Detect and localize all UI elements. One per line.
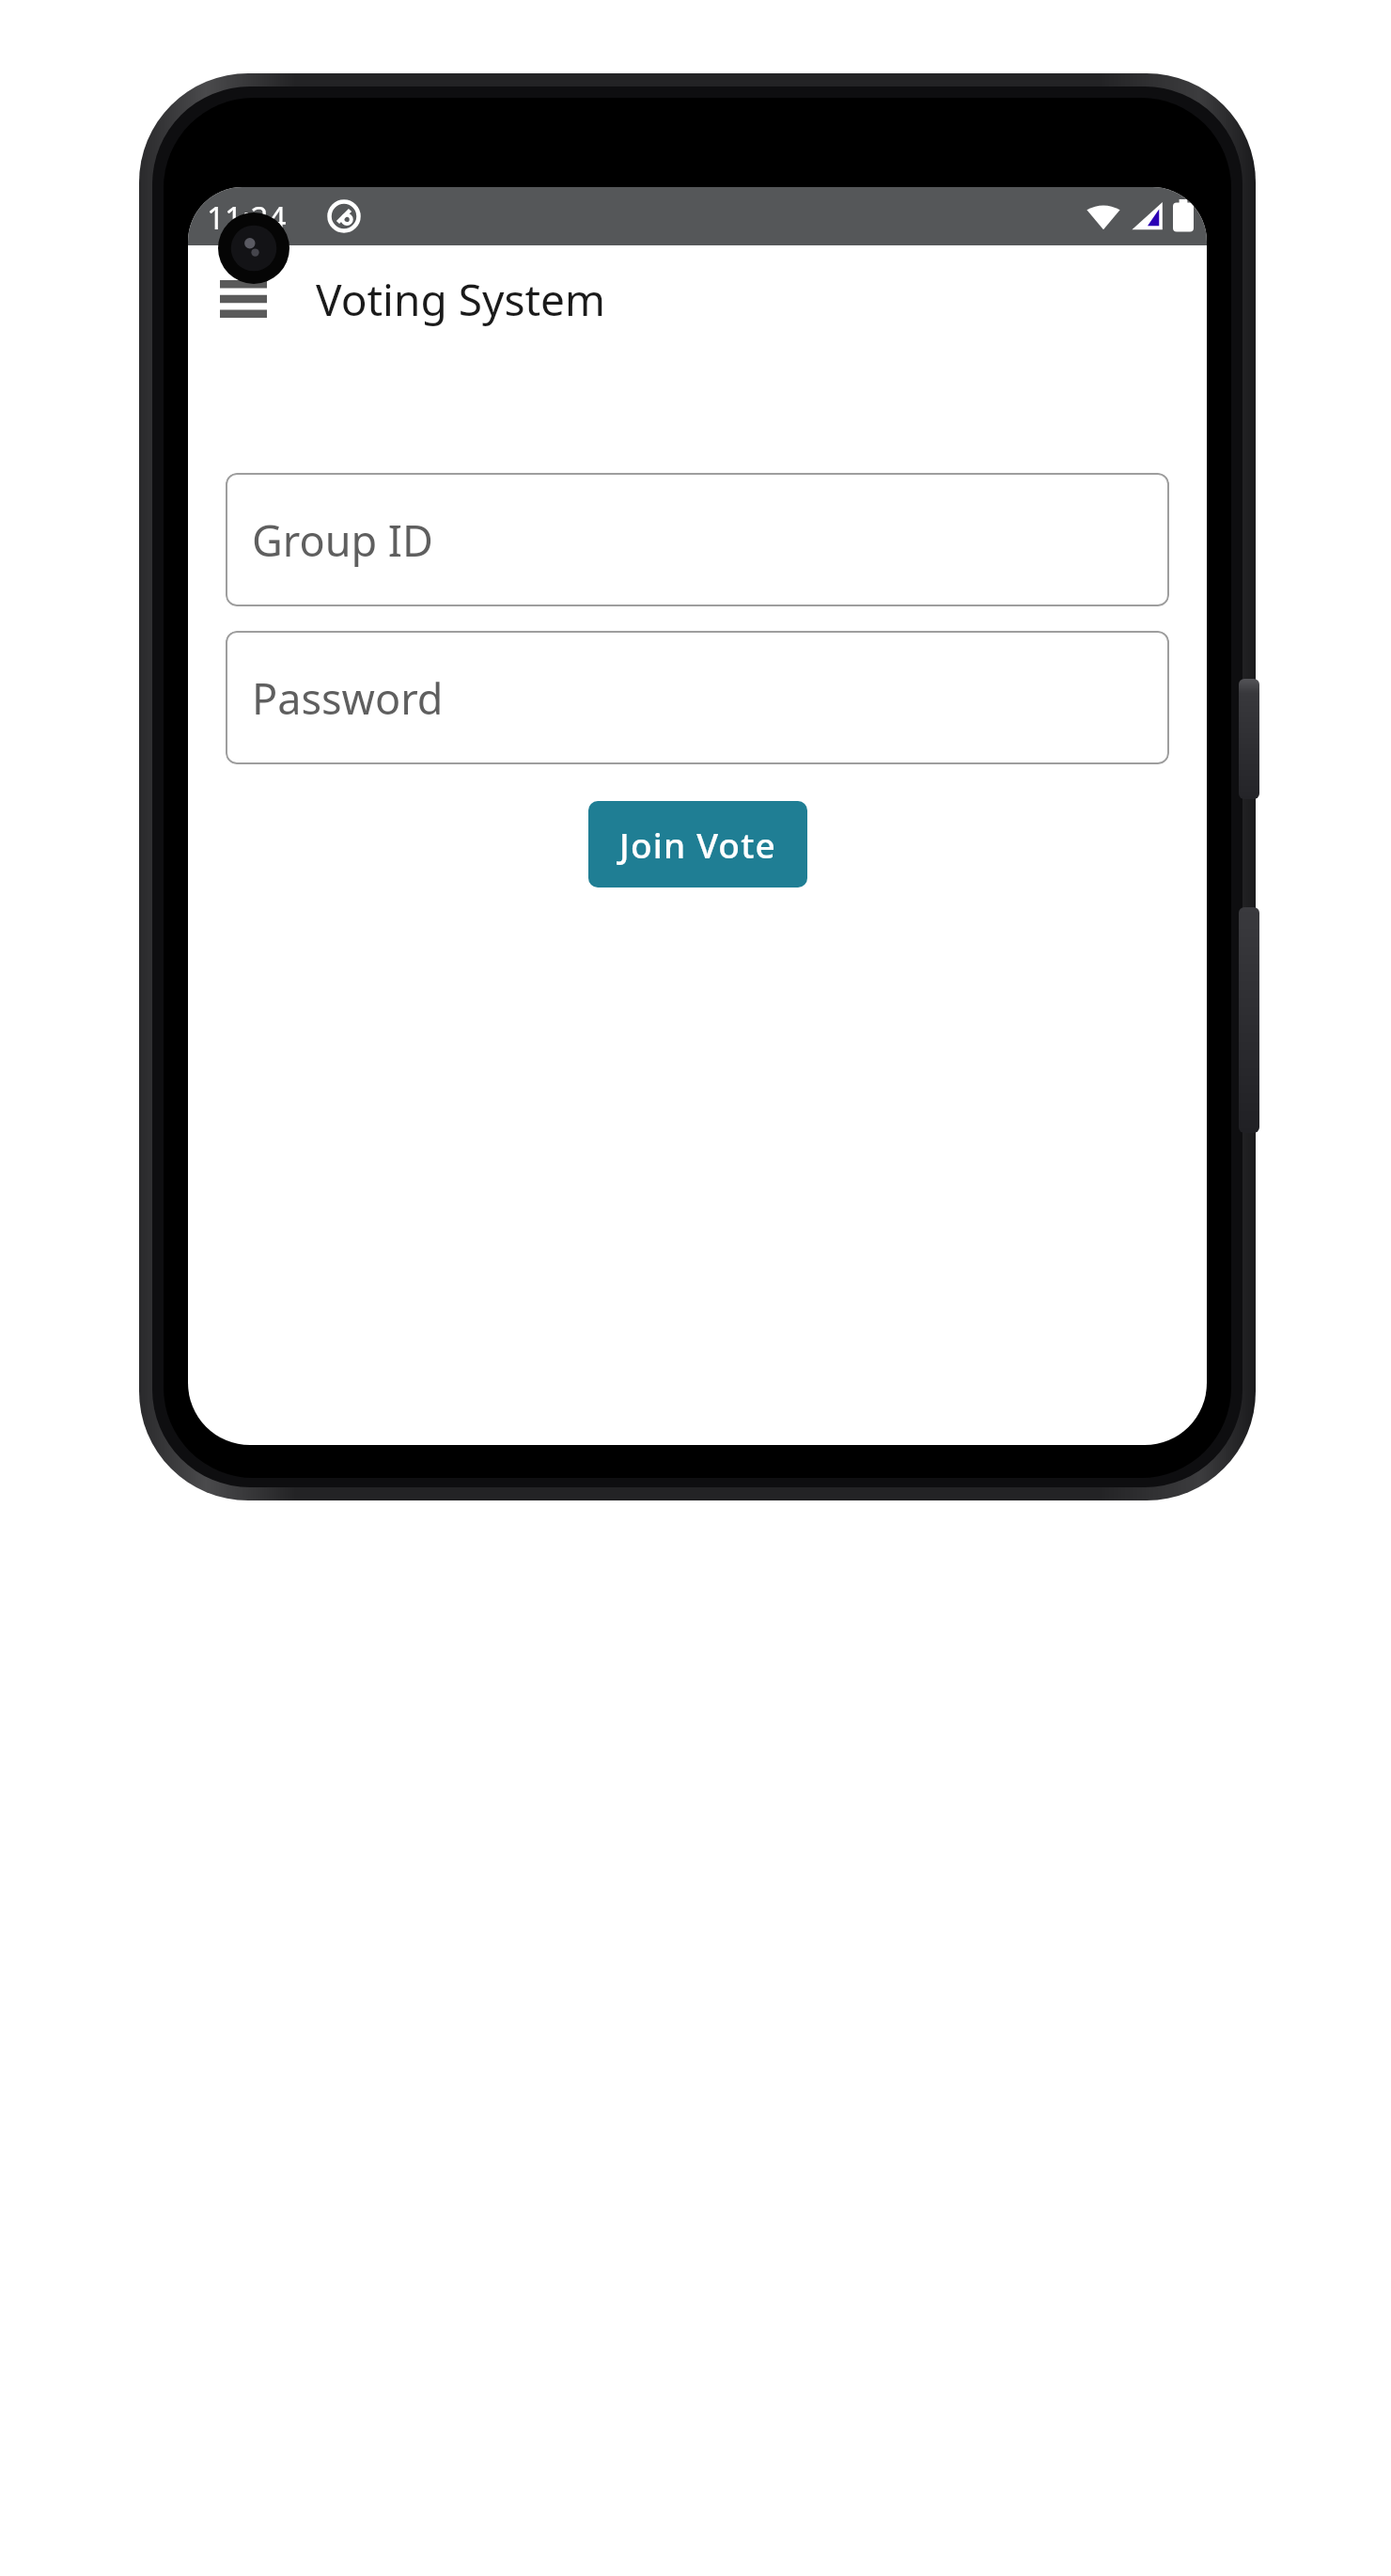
button[interactable]: Open navigation menu [207, 262, 280, 336]
staticText: Password [252, 669, 444, 727]
button[interactable]: Group ID [226, 473, 1169, 606]
button[interactable]: Join Vote [588, 801, 807, 887]
staticText: Voting System [316, 270, 605, 329]
staticText: 11:24 [207, 196, 287, 239]
staticText: Group ID [252, 511, 433, 569]
staticText: Join Vote [619, 821, 776, 868]
button[interactable]: Password [226, 631, 1169, 764]
